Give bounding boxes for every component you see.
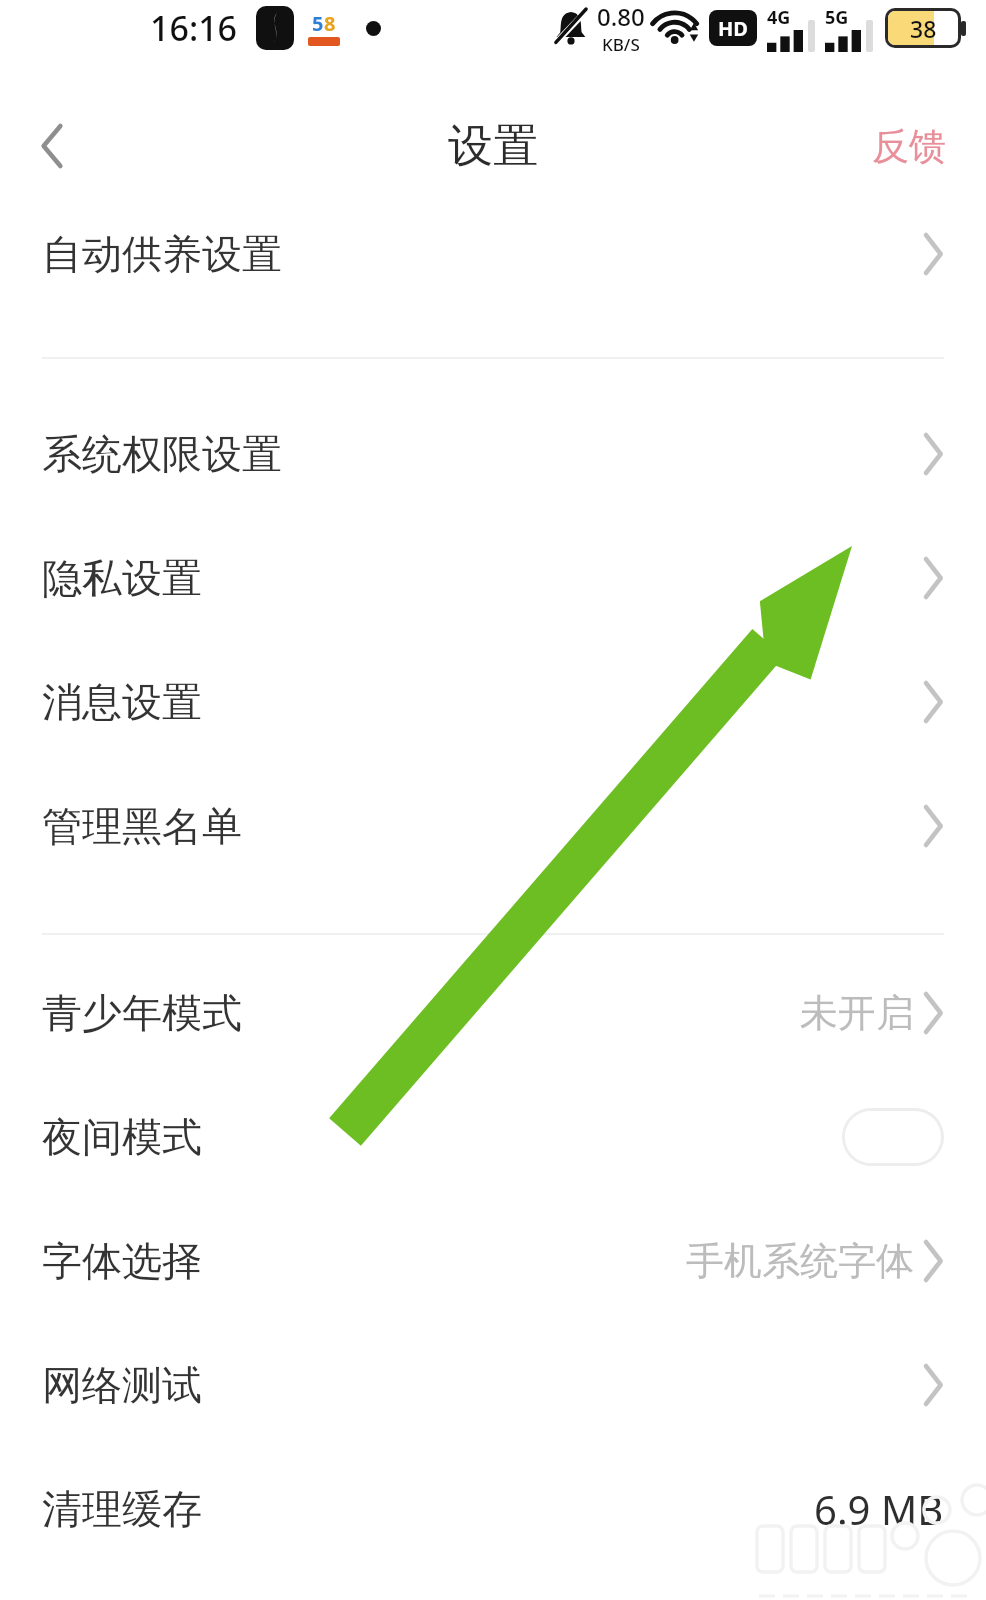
staticText: 隐私设置 bbox=[42, 553, 202, 603]
staticText: 消息设置 bbox=[42, 677, 202, 727]
button[interactable]: 反馈 bbox=[832, 100, 986, 192]
staticText: 管理黑名单 bbox=[42, 801, 242, 851]
button[interactable]: 系统权限设置 bbox=[0, 392, 986, 516]
staticText: 反馈 bbox=[872, 123, 946, 170]
button[interactable]: 隐私设置 bbox=[0, 516, 986, 640]
staticText: 38 bbox=[910, 13, 937, 44]
button[interactable]: 管理黑名单 bbox=[0, 764, 986, 888]
staticText: 4G bbox=[767, 5, 791, 30]
button[interactable]: 夜间模式 bbox=[0, 1075, 986, 1199]
button[interactable]: 消息设置 bbox=[0, 640, 986, 764]
staticText: 自动供养设置 bbox=[42, 229, 282, 279]
staticText: 8 bbox=[324, 10, 336, 37]
staticText: 青少年模式 bbox=[42, 988, 242, 1038]
button[interactable]: 网络测试 bbox=[0, 1323, 986, 1447]
button[interactable]: 青少年模式 bbox=[0, 951, 986, 1075]
staticText: 手机系统字体 bbox=[686, 1237, 914, 1285]
staticText: 5G bbox=[825, 5, 849, 30]
staticText: 清理缓存 bbox=[42, 1484, 202, 1534]
staticText: 0.80 bbox=[597, 0, 645, 33]
staticText: 设置 bbox=[448, 118, 538, 175]
staticText: 6.9 MB bbox=[814, 1482, 944, 1536]
staticText: 系统权限设置 bbox=[42, 429, 282, 479]
staticText: 夜间模式 bbox=[42, 1112, 202, 1162]
staticText: KB/S bbox=[602, 33, 640, 56]
staticText: 16:16 bbox=[150, 5, 238, 51]
button[interactable]: 字体选择 bbox=[0, 1199, 986, 1323]
staticText: 网络测试 bbox=[42, 1360, 202, 1410]
button[interactable]: Back bbox=[0, 100, 104, 192]
staticText: HD bbox=[718, 15, 748, 42]
staticText: 5 bbox=[312, 10, 324, 37]
button[interactable]: 清理缓存 bbox=[0, 1447, 986, 1571]
staticText: 字体选择 bbox=[42, 1236, 202, 1286]
staticText: 未开启 bbox=[800, 989, 914, 1037]
button[interactable]: 自动供养设置 bbox=[0, 192, 986, 316]
